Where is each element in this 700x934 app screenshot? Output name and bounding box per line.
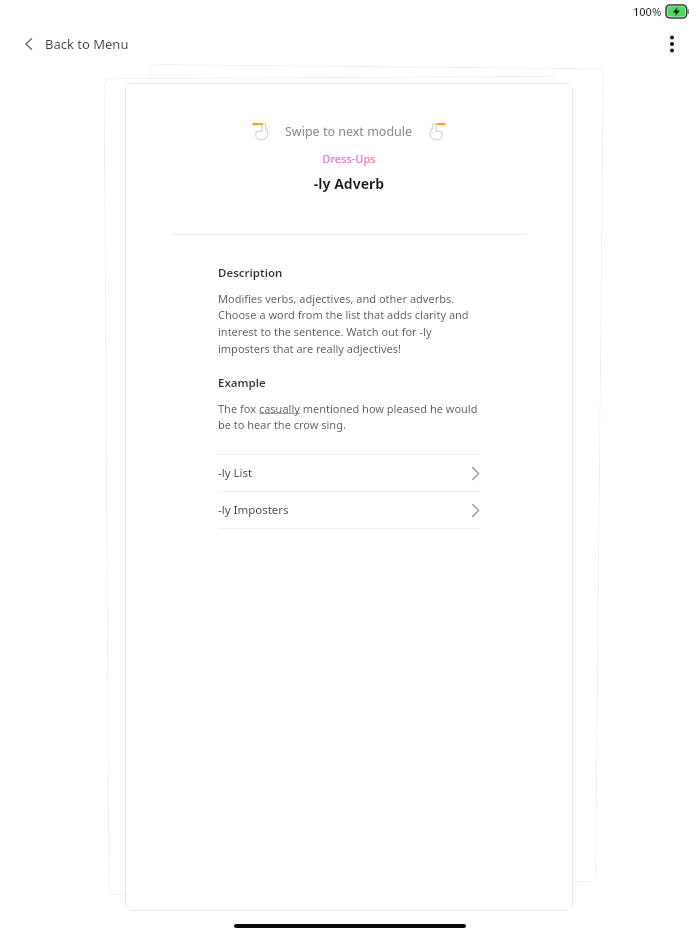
button[interactable]: -ly List [218,455,480,491]
staticText: Description [218,265,283,281]
staticText: The fox casually mentioned how pleased h… [218,401,480,432]
staticText: 100% [633,4,662,19]
button[interactable]: More options [654,26,690,62]
staticText: -ly Adverb [125,174,573,193]
staticText: Back to Menu [45,35,129,53]
staticText: -ly List [218,465,253,481]
staticText: Example [218,375,266,391]
staticText: -ly Imposters [218,502,289,518]
button[interactable]: -ly Imposters [218,492,480,528]
staticText: Swipe to next module [285,123,413,140]
button[interactable]: Back to Menu [18,29,133,59]
staticText: Modifies verbs, adjectives, and other ad… [218,291,480,356]
staticText: Dress-Ups [125,151,573,166]
